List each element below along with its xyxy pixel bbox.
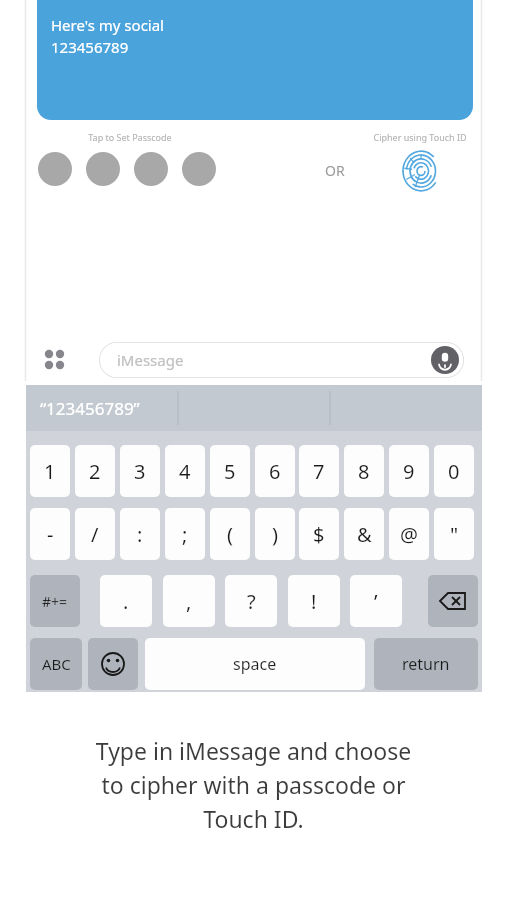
staticText: 2 [89,458,101,485]
button[interactable]: 9 [389,445,429,497]
button[interactable]: 7 [299,445,339,497]
button[interactable]: ABC [30,638,82,690]
staticText: OR [325,161,345,180]
button[interactable]: ? [225,575,277,627]
button[interactable]: ! [288,575,340,627]
staticText: ! [311,588,317,615]
button[interactable]: #+= [30,575,80,627]
staticText: ? [247,588,256,615]
staticText: . [123,588,129,615]
staticText: 1 [44,458,56,485]
button[interactable]: 4 [165,445,205,497]
staticText: : [137,521,143,548]
button[interactable]: Cipher using Touch ID [400,150,442,192]
button[interactable]: 5 [210,445,250,497]
button[interactable]: Apps [44,348,72,376]
staticText: ( [227,521,233,548]
staticText: space [233,653,277,675]
staticText: / [91,521,99,548]
button[interactable]: iMessage [99,342,464,378]
staticText: Tap to Set Passcode [50,131,210,143]
button[interactable]: 3 [120,445,160,497]
button[interactable]: 6 [255,445,295,497]
button[interactable]: Emoji [88,638,138,690]
staticText: 0 [448,458,460,485]
staticText: #+= [42,592,68,611]
staticText: ) [272,521,278,548]
button[interactable]: / [75,508,115,560]
button[interactable]: Backspace [428,575,478,627]
staticText: 7 [313,458,325,485]
button[interactable]: & [344,508,384,560]
button[interactable]: 0 [434,445,474,497]
staticText: - [47,521,54,548]
button[interactable]: 2 [75,445,115,497]
button[interactable]: ( [210,508,250,560]
button[interactable]: Dictate [431,346,459,374]
staticText: ’ [374,588,378,615]
staticText: ABC [42,654,71,674]
staticText: 4 [179,458,191,485]
button[interactable]: ’ [350,575,402,627]
staticText: return [402,653,450,675]
staticText: 8 [358,458,370,485]
staticText: Here's my social [51,15,164,35]
button[interactable]: space [145,638,365,690]
staticText: " [450,521,459,548]
button[interactable]: return [374,638,478,690]
button[interactable]: $ [299,508,339,560]
button[interactable]: : [120,508,160,560]
button[interactable]: 8 [344,445,384,497]
button[interactable]: - [30,508,70,560]
button[interactable]: . [100,575,152,627]
staticText: & [357,521,372,548]
staticText: 3 [134,458,146,485]
staticText: 9 [403,458,415,485]
button[interactable]: @ [389,508,429,560]
staticText: , [186,588,192,615]
button[interactable]: " [434,508,474,560]
button[interactable]: ; [165,508,205,560]
staticText: 123456789 [51,37,129,57]
staticText: $ [313,521,325,548]
staticText: 5 [224,458,236,485]
staticText: Type in iMessage and choose to cipher wi… [28,735,479,834]
button[interactable]: Here's my social [37,0,473,120]
staticText: ; [182,521,188,548]
button[interactable]: Set passcode [38,152,216,186]
button[interactable]: 1 [30,445,70,497]
button[interactable]: ) [255,508,295,560]
staticText: iMessage [117,350,184,370]
staticText: @ [400,521,418,548]
staticText: Cipher using Touch ID [355,131,485,143]
button[interactable]: , [163,575,215,627]
staticText: “123456789” [40,397,140,420]
staticText: 6 [269,458,281,485]
